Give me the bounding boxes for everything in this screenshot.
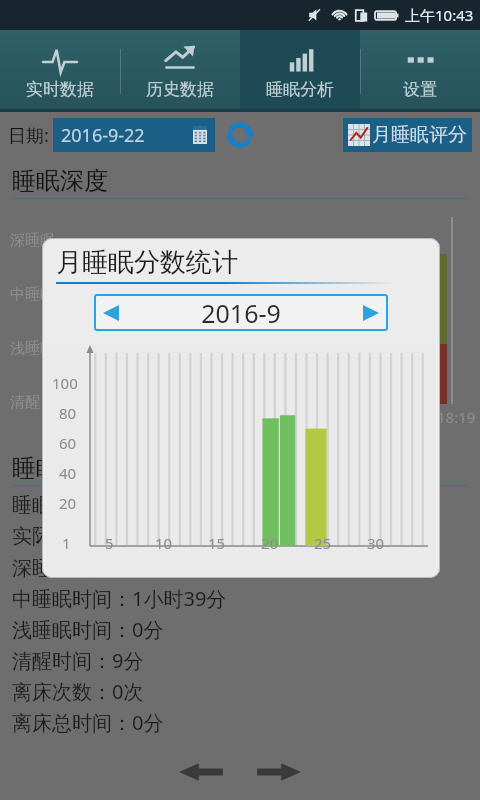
staticText: 深睡眠 <box>10 231 55 250</box>
staticText: 中睡眠时间：1小时39分 <box>12 585 227 612</box>
staticText: 月睡眠分数统计 <box>56 246 238 279</box>
staticText: 清醒时间：9分 <box>12 647 144 674</box>
staticText: 睡眠深度 <box>12 166 108 196</box>
staticText: 睡眠分析 <box>266 79 334 100</box>
staticText: 历史数据 <box>146 79 214 100</box>
staticText: 设置 <box>403 79 437 100</box>
button[interactable]: Previous month <box>94 296 128 330</box>
button[interactable]: 设置 <box>360 30 480 112</box>
staticText: 离床次数：0次 <box>12 678 144 705</box>
staticText: 月睡眠评分 <box>372 123 467 147</box>
button[interactable]: Next month <box>354 296 388 330</box>
button[interactable]: 月睡眠评分 <box>343 118 472 152</box>
staticText: 日期: <box>8 123 49 148</box>
button[interactable]: Next <box>252 745 306 799</box>
staticText: 上午10:43 <box>405 5 474 25</box>
staticText: 40 <box>59 463 77 483</box>
staticText: 20 <box>59 493 77 513</box>
staticText: 睡眠 <box>12 453 60 483</box>
staticText: 18:19 <box>437 407 476 427</box>
staticText: 离床总时间：0分 <box>12 709 164 736</box>
button[interactable]: Refresh <box>225 120 255 150</box>
button[interactable]: 实时数据 <box>0 30 120 112</box>
staticText: 浅睡眠 <box>10 339 55 358</box>
button[interactable]: 2016-9-22 <box>53 118 215 152</box>
button[interactable]: Previous <box>174 745 228 799</box>
staticText: 10 <box>155 533 173 553</box>
staticText: 60 <box>59 433 77 453</box>
staticText: 2016-9-22 <box>61 123 145 148</box>
staticText: 浅睡眠时间：0分 <box>12 616 164 643</box>
staticText: 深睡眠时间：2小时20分 <box>12 554 227 581</box>
staticText: 实际睡眠时间： <box>12 524 152 549</box>
staticText: 5 <box>105 533 114 553</box>
staticText: 15 <box>208 533 226 553</box>
staticText: 100 <box>52 373 78 393</box>
staticText: 20 <box>261 533 279 553</box>
staticText: 实时数据 <box>26 79 94 100</box>
staticText: 30 <box>367 533 385 553</box>
staticText: 80 <box>59 403 77 423</box>
staticText: 中睡眠 <box>10 285 55 304</box>
staticText: 1 <box>62 533 71 553</box>
staticText: 25 <box>314 533 332 553</box>
button[interactable]: 睡眠分析 <box>240 30 360 112</box>
button[interactable]: 历史数据 <box>120 30 240 112</box>
staticText: 清醒 <box>10 393 40 412</box>
staticText: 睡眠评分： <box>12 493 112 518</box>
staticText: 2016-9 <box>128 296 354 330</box>
